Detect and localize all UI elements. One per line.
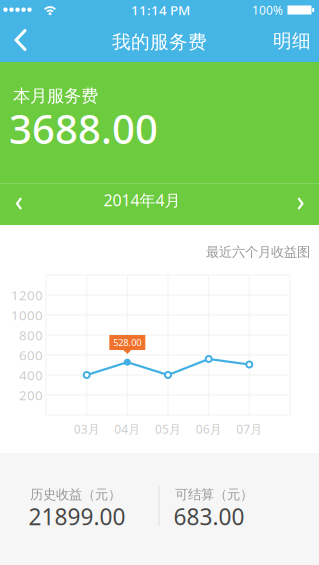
staticText: 11:14 PM (131, 1, 190, 19)
staticText: 100% (252, 2, 283, 18)
staticText: 200 (19, 386, 43, 404)
staticText: 3688.00 (9, 102, 158, 155)
staticText: 06月 (196, 421, 222, 437)
staticText: 07月 (236, 421, 262, 437)
staticText: 本月服务费 (13, 85, 98, 107)
staticText: 可结算（元） (175, 486, 253, 503)
staticText: 600 (19, 346, 43, 364)
staticText: 04月 (114, 421, 140, 437)
button[interactable]: Previous month (0, 184, 40, 225)
button[interactable]: Back (0, 20, 44, 62)
staticText: 21899.00 (28, 501, 125, 531)
staticText: 最近六个月收益图 (206, 244, 310, 260)
staticText: 1000 (11, 306, 43, 324)
staticText: 1200 (11, 286, 43, 304)
staticText: 800 (19, 326, 43, 344)
staticText: 我的服务费 (112, 30, 207, 53)
staticText: 400 (19, 366, 43, 384)
button[interactable]: 明细 (273, 20, 319, 62)
staticText: 528.00 (113, 336, 141, 349)
staticText: 03月 (74, 421, 100, 437)
button[interactable]: Next month (279, 184, 319, 225)
staticText: 明细 (273, 29, 311, 52)
staticText: 05月 (155, 421, 181, 437)
staticText: 历史收益（元） (30, 486, 121, 503)
staticText: 2014年4月 (103, 189, 180, 211)
staticText: 683.00 (173, 501, 244, 531)
